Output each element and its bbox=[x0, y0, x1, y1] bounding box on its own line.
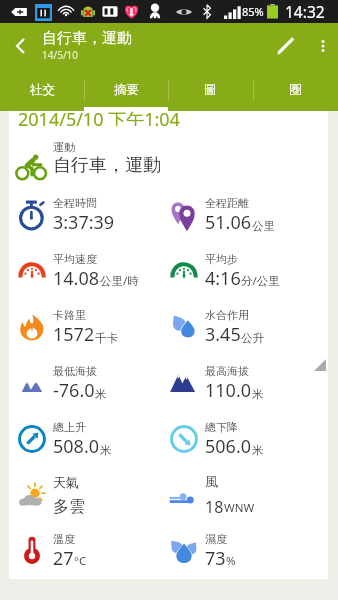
staticText: °C bbox=[74, 553, 87, 569]
button[interactable]: Ascent bbox=[9, 411, 161, 467]
button[interactable]: Max altitude bbox=[161, 355, 313, 411]
staticText: 14/5/10 bbox=[42, 48, 79, 62]
button[interactable]: Descent bbox=[161, 411, 313, 467]
staticText: 最高海拔 bbox=[205, 364, 249, 378]
staticText: 風 bbox=[205, 473, 218, 489]
staticText: 14:32 bbox=[285, 1, 325, 22]
staticText: 運動 bbox=[53, 140, 75, 154]
staticText: 全程距離 bbox=[205, 196, 249, 210]
staticText: % bbox=[226, 553, 236, 569]
button[interactable]: 摘要 bbox=[84, 68, 168, 111]
staticText: 水合作用 bbox=[205, 308, 249, 322]
staticText: 2014/5/10 下午1:04 bbox=[18, 107, 180, 126]
staticText: 社交 bbox=[30, 82, 55, 98]
button[interactable]: Temperature bbox=[9, 523, 161, 579]
staticText: 米 bbox=[100, 443, 112, 457]
button[interactable]: Weather bbox=[9, 467, 161, 523]
staticText: 天氣 bbox=[53, 474, 79, 490]
button[interactable]: Humidity bbox=[161, 523, 313, 579]
staticText: 全程時間 bbox=[53, 196, 97, 210]
button[interactable]: 運動 bbox=[9, 130, 328, 187]
staticText: 最低海拔 bbox=[53, 364, 97, 378]
staticText: 摘要 bbox=[114, 82, 139, 98]
staticText: 1572 bbox=[53, 322, 95, 347]
staticText: 平均速度 bbox=[53, 252, 97, 266]
staticText: 米 bbox=[95, 387, 107, 401]
staticText: 公里/時 bbox=[100, 273, 139, 289]
staticText: 公里 bbox=[252, 219, 275, 233]
staticText: 圈 bbox=[289, 82, 302, 98]
button[interactable]: Avg pace bbox=[161, 243, 313, 299]
staticText: 圖 bbox=[204, 82, 217, 98]
staticText: 14.08 bbox=[53, 266, 100, 291]
staticText: 自行車，運動 bbox=[42, 29, 132, 48]
button[interactable]: Avg speed bbox=[9, 243, 161, 299]
staticText: 分/公里 bbox=[241, 273, 280, 289]
staticText: 506.0 bbox=[205, 434, 252, 459]
staticText: 3.45 bbox=[205, 322, 241, 347]
button[interactable]: Edit bbox=[264, 23, 308, 68]
button[interactable]: Calories bbox=[9, 299, 161, 355]
staticText: 米 bbox=[252, 443, 264, 457]
staticText: WNW bbox=[224, 500, 255, 516]
staticText: 千卡 bbox=[95, 331, 118, 345]
staticText: -76.0 bbox=[53, 378, 95, 403]
staticText: 卡路里 bbox=[53, 308, 86, 322]
staticText: 110.0 bbox=[205, 378, 252, 403]
button[interactable]: Hydration bbox=[161, 299, 313, 355]
staticText: 總下降 bbox=[205, 420, 238, 434]
staticText: 溫度 bbox=[53, 532, 75, 546]
staticText: 73 bbox=[205, 546, 226, 571]
staticText: 51.06 bbox=[205, 210, 252, 235]
button[interactable]: 社交 bbox=[0, 68, 84, 111]
button[interactable]: Distance bbox=[161, 187, 313, 243]
staticText: 3:37:39 bbox=[53, 210, 115, 235]
button[interactable]: 圈 bbox=[253, 68, 338, 111]
staticText: 508.0 bbox=[53, 434, 100, 459]
staticText: 濕度 bbox=[205, 532, 227, 546]
staticText: 4:16 bbox=[205, 266, 241, 291]
staticText: 85% bbox=[242, 4, 264, 19]
staticText: 米 bbox=[252, 387, 264, 401]
staticText: 多雲 bbox=[53, 497, 85, 517]
button[interactable]: Duration bbox=[9, 187, 161, 243]
button[interactable]: 圖 bbox=[168, 68, 253, 111]
staticText: 平均步 bbox=[205, 252, 238, 266]
button[interactable]: More options bbox=[308, 23, 338, 68]
button[interactable]: Wind bbox=[161, 467, 313, 523]
staticText: 自行車，運動 bbox=[53, 154, 161, 177]
button[interactable]: Back bbox=[0, 23, 42, 68]
staticText: 總上升 bbox=[53, 420, 86, 434]
staticText: 27 bbox=[53, 546, 74, 571]
button[interactable]: Min altitude bbox=[9, 355, 161, 411]
staticText: 公升 bbox=[241, 331, 264, 345]
staticText: 18 bbox=[205, 496, 224, 518]
